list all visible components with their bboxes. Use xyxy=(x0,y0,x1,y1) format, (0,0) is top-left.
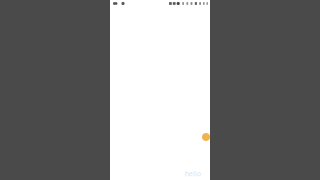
button[interactable]: Compose xyxy=(202,133,210,141)
staticText: hello xyxy=(185,169,201,178)
